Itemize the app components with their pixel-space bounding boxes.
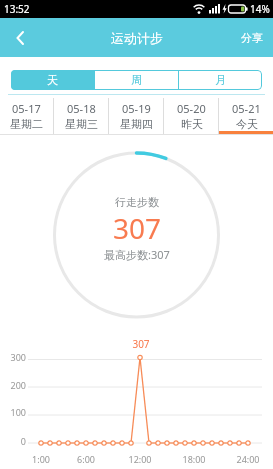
staticText: 307 <box>121 337 161 351</box>
staticText: 05-18 <box>67 101 96 116</box>
staticText: 24:00 <box>231 453 265 465</box>
staticText: 6:00 <box>71 453 101 465</box>
staticText: 05-21 <box>232 101 261 116</box>
staticText: 0 <box>0 435 26 447</box>
staticText: 运动计步 <box>111 30 163 46</box>
staticText: 100 <box>0 406 26 418</box>
staticText: 分享 <box>241 31 263 45</box>
staticText: 307 <box>113 209 162 247</box>
staticText: 12:00 <box>123 453 157 465</box>
button[interactable]: 05-20 <box>164 98 218 134</box>
button[interactable]: 05-21 <box>219 98 273 134</box>
staticText: 星期二 <box>10 117 43 131</box>
staticText: 天 <box>47 73 58 87</box>
staticText: 月 <box>215 73 226 87</box>
staticText: 18:00 <box>177 453 211 465</box>
button[interactable]: 周 <box>95 70 178 90</box>
button[interactable]: 月 <box>179 70 262 90</box>
button[interactable] <box>8 26 32 50</box>
staticText: 星期三 <box>65 117 98 131</box>
staticText: 昨天 <box>181 117 203 131</box>
staticText: 星期四 <box>120 117 153 131</box>
staticText: 周 <box>131 73 142 87</box>
button[interactable]: 05-17 <box>0 98 53 134</box>
button[interactable]: 天 <box>11 70 94 90</box>
staticText: 最高步数:307 <box>104 247 170 262</box>
button[interactable]: 05-19 <box>109 98 163 134</box>
staticText: 14% <box>250 2 270 16</box>
button[interactable]: 分享 <box>241 31 273 45</box>
staticText: 05-20 <box>177 101 206 116</box>
staticText: 300 <box>0 351 26 363</box>
staticText: 05-17 <box>12 101 41 116</box>
staticText: 05-19 <box>122 101 151 116</box>
staticText: 13:52 <box>4 2 30 16</box>
button[interactable]: 05-18 <box>54 98 108 134</box>
staticText: 行走步数 <box>115 195 159 209</box>
staticText: 今天 <box>236 117 258 131</box>
staticText: 1:00 <box>26 453 56 465</box>
staticText: 200 <box>0 379 26 391</box>
